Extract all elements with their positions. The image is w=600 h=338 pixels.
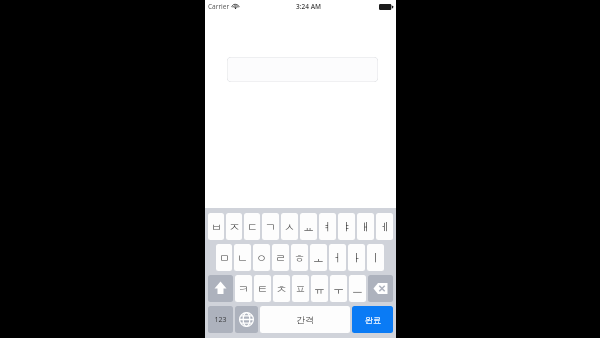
button[interactable]: ㅠ	[311, 275, 328, 302]
button[interactable]: ㅊ	[273, 275, 290, 302]
staticText: ㅌ	[257, 282, 268, 296]
button[interactable]: 간격	[260, 306, 350, 333]
button[interactable]: 123	[208, 306, 233, 333]
staticText: ㅁ	[219, 251, 230, 265]
staticText: ㄹ	[275, 251, 286, 265]
button[interactable]: ㄴ	[234, 244, 251, 271]
staticText: ㄱ	[265, 220, 276, 234]
staticText: ㅎ	[294, 251, 305, 265]
staticText: ㅑ	[341, 220, 352, 234]
button[interactable]	[227, 57, 378, 82]
button[interactable]: ㅓ	[329, 244, 346, 271]
button[interactable]: ㅏ	[348, 244, 365, 271]
button[interactable]: Shift	[208, 275, 233, 302]
staticText: ㅓ	[332, 251, 343, 265]
button[interactable]: ㅗ	[310, 244, 327, 271]
staticText: ㅗ	[313, 251, 324, 265]
staticText: 3:24 AM	[296, 2, 322, 11]
staticText: ㅏ	[351, 251, 362, 265]
button[interactable]: ㅌ	[254, 275, 271, 302]
staticText: 간격	[296, 314, 314, 325]
button[interactable]: ㅂ	[208, 213, 224, 240]
staticText: ㄷ	[247, 220, 258, 234]
staticText: ㅍ	[295, 282, 306, 296]
button[interactable]: ㄹ	[272, 244, 289, 271]
staticText: ㅜ	[333, 282, 344, 296]
staticText: ㅡ	[352, 282, 363, 296]
button[interactable]: ㄱ	[262, 213, 279, 240]
button[interactable]: ㅛ	[300, 213, 317, 240]
staticText: ㅐ	[360, 220, 371, 234]
button[interactable]: ㅑ	[338, 213, 355, 240]
button[interactable]: Change keyboard language	[235, 306, 258, 333]
staticText: Carrier	[208, 2, 230, 11]
button[interactable]: ㅅ	[281, 213, 298, 240]
button[interactable]: ㅈ	[226, 213, 242, 240]
staticText: ㅠ	[314, 282, 325, 296]
staticText: ㅋ	[238, 282, 249, 296]
staticText: ㅛ	[303, 220, 314, 234]
button[interactable]: ㅜ	[330, 275, 347, 302]
button[interactable]: ㅕ	[319, 213, 336, 240]
staticText: ㅊ	[276, 282, 287, 296]
button[interactable]: Backspace	[368, 275, 393, 302]
button[interactable]: ㅎ	[291, 244, 308, 271]
button[interactable]: 완료	[352, 306, 393, 333]
staticText: ㅂ	[211, 220, 222, 234]
button[interactable]: ㅔ	[376, 213, 393, 240]
button[interactable]: ㅡ	[349, 275, 366, 302]
button[interactable]: ㅁ	[216, 244, 232, 271]
button[interactable]: ㅍ	[292, 275, 309, 302]
staticText: ㄴ	[237, 251, 248, 265]
staticText: 123	[214, 315, 227, 325]
staticText: ㅇ	[256, 251, 267, 265]
staticText: ㅣ	[370, 251, 381, 265]
staticText: ㅅ	[284, 220, 295, 234]
button[interactable]: ㅣ	[367, 244, 384, 271]
staticText: ㅔ	[379, 220, 390, 234]
staticText: ㅕ	[322, 220, 333, 234]
button[interactable]: ㅐ	[357, 213, 374, 240]
staticText: ㅈ	[229, 220, 240, 234]
staticText: 완료	[365, 315, 381, 325]
button[interactable]: ㅇ	[253, 244, 270, 271]
button[interactable]: ㄷ	[244, 213, 260, 240]
button[interactable]: ㅋ	[235, 275, 252, 302]
